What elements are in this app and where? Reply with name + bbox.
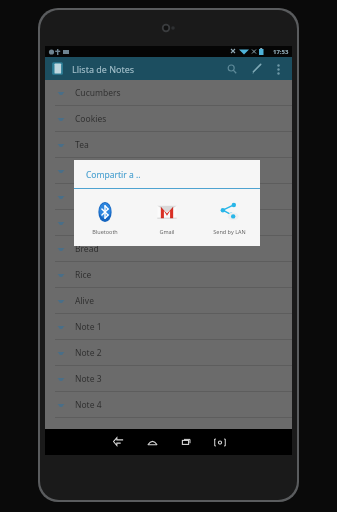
staticText: Llista de Notes (72, 63, 135, 75)
staticText: Note 1 (75, 321, 102, 333)
staticText: Tea (75, 139, 89, 151)
staticText: Compartir a .. (86, 169, 141, 181)
staticText: Send by LAN (213, 228, 246, 235)
button[interactable]: Gmail (136, 189, 198, 246)
staticText: Rice (75, 269, 92, 281)
staticText: Note 2 (75, 347, 102, 359)
staticText: Bread (75, 243, 99, 255)
button[interactable]: Rice (45, 262, 292, 287)
button[interactable]: Back (101, 429, 135, 455)
button[interactable]: Charles 988886667788 (45, 184, 292, 209)
staticText: Cucumbers (75, 87, 121, 99)
button[interactable]: Search (220, 57, 244, 80)
staticText: Note 4 (75, 399, 102, 411)
button[interactable]: App icon (50, 61, 65, 76)
button[interactable]: Cookies (45, 106, 292, 131)
button[interactable]: Note 2 (45, 340, 292, 365)
button[interactable]: Recents (169, 429, 203, 455)
button[interactable]: Send by LAN (198, 189, 260, 246)
button[interactable]: Home (135, 429, 169, 455)
button[interactable]: Cucumbers (45, 80, 292, 105)
button[interactable]: Note 3 (45, 366, 292, 391)
staticText: 17:53 (273, 48, 289, 56)
button[interactable]: Meeting for Google (45, 158, 292, 183)
staticText: Meeting for Google (75, 165, 153, 177)
button[interactable]: Tea (45, 132, 292, 157)
staticText: Charles 988886667788 (75, 191, 166, 203)
button[interactable]: Bread (45, 236, 292, 261)
button[interactable]: Bluetooth (74, 189, 136, 246)
staticText: Gmail (159, 228, 175, 235)
staticText: Bluetooth (92, 228, 118, 235)
button[interactable]: More options (268, 59, 288, 79)
button[interactable]: Pizza (45, 210, 292, 235)
button[interactable]: Note 4 (45, 392, 292, 417)
button[interactable]: Edit (244, 57, 268, 80)
button[interactable]: Note 1 (45, 314, 292, 339)
staticText: Alive (75, 295, 94, 307)
staticText: Note 3 (75, 373, 102, 385)
button[interactable]: Alive (45, 288, 292, 313)
staticText: Cookies (75, 113, 107, 125)
button[interactable]: Screenshot (203, 429, 237, 455)
